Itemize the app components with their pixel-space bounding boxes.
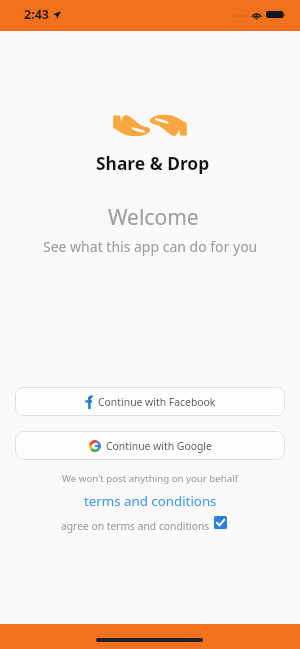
staticText: agree on terms and conditions: [61, 519, 210, 533]
button[interactable]: Continue with Facebook: [15, 387, 285, 416]
button[interactable]: Continue with Google: [15, 431, 285, 460]
staticText: Continue with Google: [106, 439, 212, 453]
staticText: 2:43: [24, 6, 49, 23]
staticText: Welcome: [108, 203, 199, 232]
staticText: Continue with Facebook: [98, 395, 216, 409]
button[interactable]: terms and conditions: [78, 490, 223, 512]
button[interactable]: Agree on terms and conditions: [214, 516, 227, 529]
staticText: Share & Drop: [96, 151, 210, 175]
staticText: terms and conditions: [84, 492, 217, 510]
staticText: See what this app can do for you: [43, 237, 258, 256]
staticText: We won't post anything on your behalf: [62, 472, 238, 485]
